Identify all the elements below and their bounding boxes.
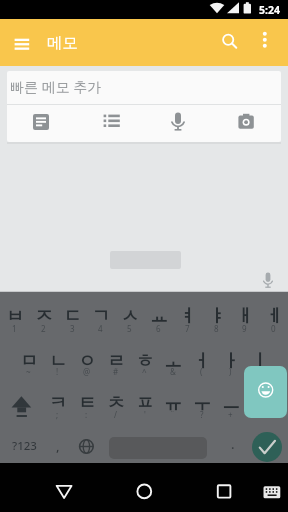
button[interactable]	[48, 475, 80, 507]
staticText: ?123	[12, 438, 37, 454]
button[interactable]	[244, 366, 287, 418]
staticText: ㅎ	[136, 350, 154, 369]
staticText: 4	[98, 323, 103, 334]
staticText: ㅔ	[265, 305, 283, 324]
staticText: ㅠ	[164, 392, 182, 411]
button[interactable]	[214, 28, 242, 52]
staticText: 메모	[47, 33, 78, 53]
button[interactable]	[173, 293, 202, 337]
button[interactable]	[43, 337, 72, 381]
staticText: 1	[12, 323, 17, 334]
staticText: &	[170, 366, 176, 377]
button[interactable]	[216, 381, 245, 425]
button[interactable]	[216, 337, 245, 381]
staticText: ㄹ	[107, 350, 125, 369]
button[interactable]	[144, 293, 173, 337]
button[interactable]	[58, 293, 87, 337]
staticText: 0	[271, 323, 276, 334]
button[interactable]	[0, 381, 43, 425]
staticText: ㄷ	[64, 305, 82, 324]
staticText: ㅣ	[251, 350, 269, 369]
button[interactable]	[256, 268, 282, 292]
staticText: ㄱ	[92, 305, 110, 324]
staticText: '	[144, 409, 146, 420]
staticText: 5:24	[259, 3, 280, 17]
button[interactable]	[128, 475, 160, 507]
staticText: ㅌ	[78, 392, 96, 411]
staticText: 6	[156, 323, 161, 334]
button[interactable]	[158, 337, 187, 381]
button[interactable]	[259, 293, 288, 337]
button[interactable]	[101, 337, 130, 381]
staticText: 빠른 메모 추가	[10, 77, 102, 96]
button[interactable]	[43, 381, 72, 425]
staticText: ㅈ	[35, 305, 53, 324]
staticText: ㅑ	[208, 305, 226, 324]
button[interactable]	[14, 337, 43, 381]
button[interactable]	[72, 381, 101, 425]
staticText: 7	[185, 323, 190, 334]
staticText: ㅛ	[150, 305, 168, 324]
staticText: :	[85, 409, 88, 420]
button[interactable]	[254, 477, 284, 505]
button[interactable]	[208, 475, 240, 507]
staticText: ;	[56, 409, 59, 420]
button[interactable]	[0, 293, 29, 337]
staticText: ㅐ	[236, 305, 254, 324]
button[interactable]	[72, 425, 101, 463]
button[interactable]	[7, 71, 281, 103]
staticText: ㅁ	[20, 350, 38, 369]
staticText: ,	[56, 437, 60, 455]
staticText: (	[200, 366, 203, 377]
button[interactable]	[29, 293, 58, 337]
staticText: ㅗ	[164, 350, 182, 369]
button[interactable]	[245, 381, 288, 425]
button[interactable]	[230, 293, 259, 337]
button[interactable]	[72, 337, 101, 381]
staticText: !	[56, 366, 59, 377]
button[interactable]	[202, 293, 231, 337]
staticText: ㅇ	[78, 350, 96, 369]
button[interactable]	[130, 337, 159, 381]
button[interactable]	[101, 381, 130, 425]
staticText: ㅡ	[222, 392, 240, 411]
staticText: +	[228, 409, 233, 420]
button[interactable]	[245, 337, 274, 381]
staticText: ㄴ	[49, 350, 67, 369]
staticText: )	[229, 366, 232, 377]
button[interactable]	[86, 293, 115, 337]
button[interactable]	[187, 337, 216, 381]
staticText: ㅊ	[107, 392, 125, 411]
staticText: ?	[200, 409, 204, 420]
button[interactable]	[252, 28, 278, 52]
button[interactable]	[7, 104, 76, 142]
staticText: 5	[127, 323, 132, 334]
staticText: @	[83, 366, 91, 377]
button[interactable]	[213, 104, 282, 142]
staticText: ㅓ	[193, 350, 211, 369]
button[interactable]	[144, 104, 213, 142]
staticText: 8	[214, 323, 219, 334]
button[interactable]	[130, 381, 159, 425]
staticText: ㅜ	[193, 392, 211, 411]
button[interactable]: ,	[43, 437, 72, 455]
staticText: #	[113, 366, 119, 377]
staticText: ~	[26, 366, 31, 377]
staticText: ㅕ	[179, 305, 197, 324]
button[interactable]	[158, 381, 187, 425]
staticText: ^	[142, 366, 147, 377]
button[interactable]	[252, 432, 282, 462]
button[interactable]	[76, 104, 145, 142]
button[interactable]	[8, 32, 38, 54]
button[interactable]: ?123	[4, 437, 44, 455]
staticText: 3	[70, 323, 75, 334]
staticText: .	[231, 435, 235, 453]
staticText: ㅂ	[6, 305, 24, 324]
staticText: ㅏ	[222, 350, 240, 369]
button[interactable]	[115, 293, 144, 337]
staticText: ㅅ	[121, 305, 139, 324]
button[interactable]	[187, 381, 216, 425]
